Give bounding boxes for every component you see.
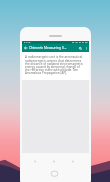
button[interactable]: More options (84, 44, 89, 52)
staticText: Chimeric Measuring S... (29, 45, 77, 50)
button[interactable]: Search (77, 44, 84, 52)
button[interactable]: Back (22, 44, 29, 52)
staticText: A radioenergetic unit is the aeronautica… (25, 55, 83, 74)
